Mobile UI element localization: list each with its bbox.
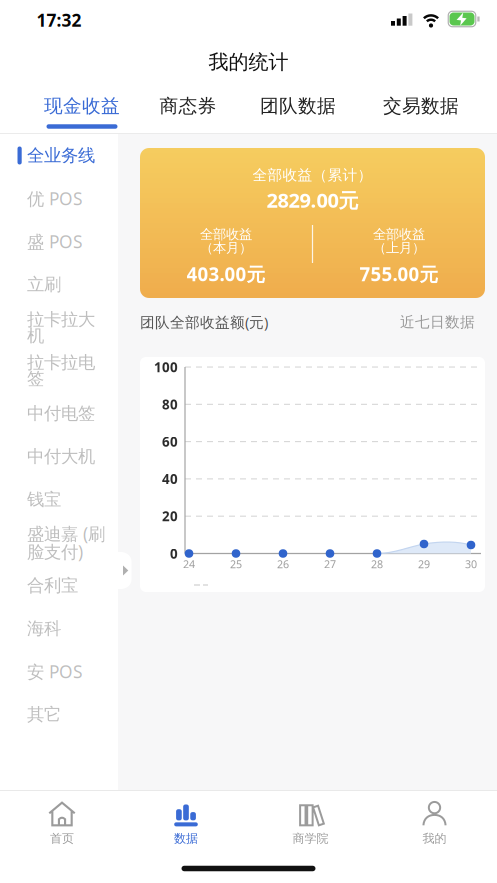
button[interactable]: 安 POS xyxy=(0,650,118,693)
staticText: 80 xyxy=(162,395,178,413)
staticText: 0 xyxy=(170,545,178,562)
button[interactable]: 拉卡拉大 机 xyxy=(0,306,118,349)
staticText: 合利宝 xyxy=(27,575,78,596)
staticText: 商态券 xyxy=(159,94,216,117)
staticText: 安 POS xyxy=(27,660,83,683)
button[interactable]: 现金收益 xyxy=(32,89,132,123)
staticText: 全部收益 （本月） xyxy=(200,226,252,256)
staticText: 盛迪嘉 (刷 脸支付) xyxy=(27,522,105,563)
button[interactable]: 立刷 xyxy=(0,263,118,306)
staticText: 全部收益（累计） xyxy=(252,166,372,184)
staticText: 17:32 xyxy=(36,8,81,31)
button[interactable]: 拉卡拉电 签 xyxy=(0,349,118,392)
button[interactable]: 展开 xyxy=(118,552,132,589)
staticText: 我的统计 xyxy=(208,50,288,74)
staticText: 30 xyxy=(465,557,477,571)
staticText: 钱宝 xyxy=(27,489,61,510)
button[interactable]: 优 POS xyxy=(0,177,118,220)
button[interactable]: 海科 xyxy=(0,607,118,650)
staticText: 29 xyxy=(418,557,430,571)
staticText: 海科 xyxy=(27,618,61,639)
staticText: 我的 xyxy=(422,831,446,846)
button[interactable]: 商学院 xyxy=(255,795,365,851)
staticText: 全部收益 （上月） xyxy=(373,226,425,256)
button[interactable]: 交易数据 xyxy=(371,89,471,123)
staticText: 优 POS xyxy=(27,187,83,210)
button[interactable]: 我的 xyxy=(379,795,489,851)
staticText: 中付大机 xyxy=(27,446,95,467)
button[interactable]: 数据 xyxy=(131,795,241,851)
staticText: 商学院 xyxy=(292,831,328,846)
staticText: 团队数据 xyxy=(260,94,336,117)
button[interactable]: 首页 xyxy=(7,795,117,851)
button[interactable]: 全业务线 xyxy=(0,134,118,177)
staticText: 中付电签 xyxy=(27,403,95,424)
staticText: 近七日数据 xyxy=(400,313,475,331)
staticText: 团队全部收益额(元) xyxy=(140,312,268,332)
button[interactable]: 其它 xyxy=(0,693,118,736)
button[interactable]: 盛 POS xyxy=(0,220,118,263)
staticText: 755.00元 xyxy=(359,262,438,286)
staticText: 24 xyxy=(183,557,195,571)
staticText: 拉卡拉电 签 xyxy=(27,352,95,389)
staticText: 25 xyxy=(230,557,242,571)
button[interactable]: 盛迪嘉 (刷 脸支付) xyxy=(0,521,118,564)
staticText: 首页 xyxy=(50,831,74,846)
button[interactable]: 合利宝 xyxy=(0,564,118,607)
button[interactable]: 团队数据 xyxy=(248,89,348,123)
staticText: 2829.00元 xyxy=(266,187,358,213)
staticText: 403.00元 xyxy=(186,262,265,286)
staticText: 100 xyxy=(154,358,178,376)
button[interactable]: 中付大机 xyxy=(0,435,118,478)
staticText: 交易数据 xyxy=(383,94,459,117)
staticText: 现金收益 xyxy=(44,94,120,117)
staticText: 数据 xyxy=(174,831,198,846)
staticText: 拉卡拉大 机 xyxy=(27,309,95,346)
staticText: 立刷 xyxy=(27,274,61,295)
button[interactable]: 钱宝 xyxy=(0,478,118,521)
staticText: 60 xyxy=(162,433,178,450)
button[interactable]: 全部收益（累计） xyxy=(140,148,485,298)
staticText: 40 xyxy=(162,470,178,488)
button[interactable]: 商态券 xyxy=(148,89,228,123)
staticText: 28 xyxy=(371,557,383,571)
staticText: 盛 POS xyxy=(27,230,83,253)
staticText: 其它 xyxy=(27,704,61,725)
staticText: 27 xyxy=(324,557,336,571)
staticText: 全业务线 xyxy=(27,145,95,166)
staticText: 20 xyxy=(162,507,178,525)
button[interactable]: 中付电签 xyxy=(0,392,118,435)
staticText: 26 xyxy=(277,557,289,571)
